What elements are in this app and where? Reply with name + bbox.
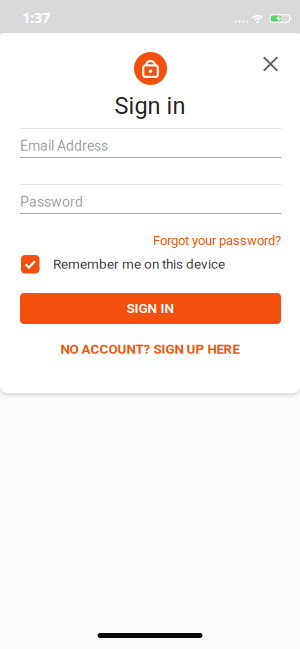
- button[interactable]: Forgot your password?: [153, 233, 281, 248]
- button[interactable]: SIGN IN: [20, 293, 281, 324]
- button[interactable]: Close: [256, 49, 285, 79]
- button[interactable]: Remember me on this device: [21, 255, 225, 273]
- staticText: SIGN IN: [126, 301, 174, 316]
- staticText: 1:37: [22, 7, 50, 27]
- button[interactable]: NO ACCOUNT? SIGN UP HERE: [60, 341, 239, 357]
- staticText: Sign in: [114, 92, 185, 120]
- staticText: Remember me on this device: [53, 256, 225, 272]
- button[interactable]: Password: [20, 184, 281, 214]
- staticText: Password: [20, 194, 83, 210]
- staticText: Email Address: [20, 138, 108, 154]
- staticText: Forgot your password?: [153, 233, 281, 248]
- button[interactable]: Email Address: [20, 128, 281, 158]
- staticText: NO ACCOUNT? SIGN UP HERE: [60, 341, 239, 357]
